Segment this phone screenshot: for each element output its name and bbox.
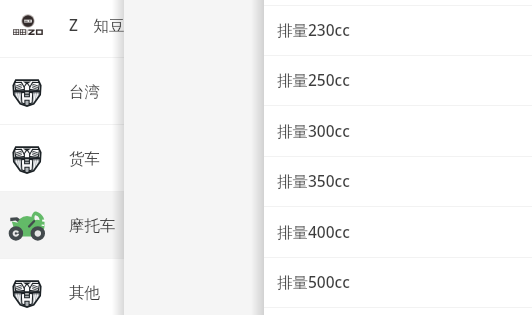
button[interactable]: 排量300cc — [264, 107, 532, 157]
button[interactable]: Z 知豆 — [0, 0, 124, 58]
staticText: 排量350cc — [277, 170, 350, 191]
staticText: 摩托车 — [69, 216, 116, 236]
button[interactable]: 摩托车 — [0, 192, 124, 259]
button[interactable]: 货车 — [0, 125, 124, 192]
staticText: 台湾 — [69, 82, 100, 102]
button[interactable]: 排量180cc — [264, 0, 532, 6]
staticText: 排量230cc — [277, 19, 350, 40]
button[interactable]: 排量230cc — [264, 6, 532, 56]
button[interactable]: 其他 — [0, 259, 124, 315]
staticText: 排量250cc — [277, 69, 350, 90]
staticText: 排量300cc — [277, 120, 350, 141]
button[interactable]: 排量250cc — [264, 56, 532, 106]
staticText: 货车 — [69, 149, 100, 169]
button[interactable]: 排量500cc — [264, 258, 532, 308]
staticText: 其他 — [69, 283, 100, 303]
button[interactable]: 排量350cc — [264, 157, 532, 207]
staticText: 排量500cc — [277, 271, 350, 292]
staticText: Z 知豆 — [69, 14, 124, 35]
button[interactable]: 排量400cc — [264, 208, 532, 258]
button[interactable]: 台湾 — [0, 58, 124, 125]
staticText: 排量400cc — [277, 221, 350, 242]
